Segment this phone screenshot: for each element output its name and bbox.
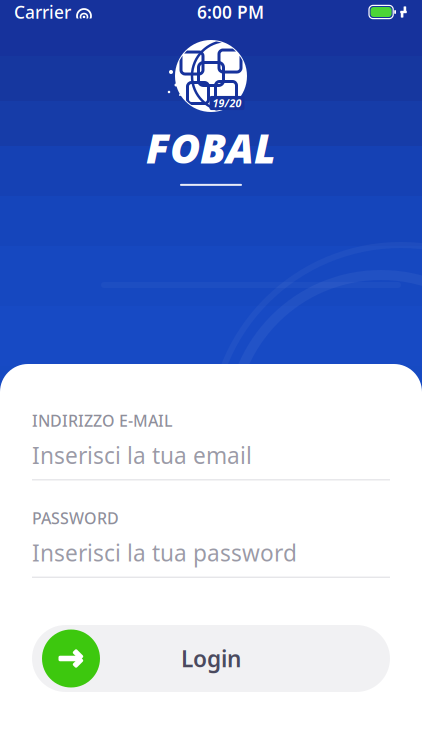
staticText: PASSWORD xyxy=(32,507,119,528)
button[interactable]: Login xyxy=(32,625,390,692)
button[interactable]: Inserisci la tua password xyxy=(32,529,390,578)
button[interactable]: Inserisci la tua email xyxy=(32,431,390,480)
staticText: Carrier xyxy=(14,0,71,23)
staticText: 6:00 PM xyxy=(197,0,264,23)
staticText: 19/20 xyxy=(212,96,241,110)
staticText: INDIRIZZO E-MAIL xyxy=(32,410,173,431)
staticText: Login xyxy=(181,643,241,673)
staticText: Inserisci la tua email xyxy=(32,440,252,470)
staticText: FOBAL xyxy=(146,120,276,175)
staticText: Inserisci la tua password xyxy=(32,538,297,568)
